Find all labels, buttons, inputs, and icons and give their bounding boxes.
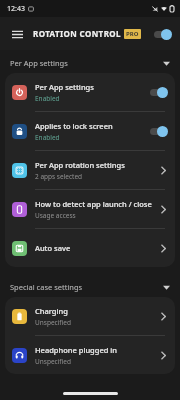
staticText: Unspecified	[35, 357, 71, 366]
button[interactable]: Applies to lock screen	[5, 112, 175, 150]
staticText: Per App rotation settings	[35, 160, 125, 170]
staticText: Special case settings	[10, 282, 83, 292]
staticText: Unspecified	[35, 318, 71, 327]
staticText: 12:43	[7, 4, 25, 14]
staticText: Enabled	[35, 94, 60, 103]
button[interactable]: Per App settings	[5, 73, 175, 111]
staticText: How to detect app launch / close	[35, 199, 152, 209]
staticText: Charging	[35, 306, 68, 316]
button[interactable]: Open navigation menu	[6, 23, 28, 45]
button[interactable]: Charging	[5, 297, 175, 335]
staticText: Per App settings	[35, 82, 94, 92]
staticText: PRO	[126, 30, 139, 38]
staticText: 2 apps selected	[35, 172, 83, 181]
staticText: Headphone plugged in	[35, 345, 118, 355]
staticText: ROTATION CONTROL	[33, 28, 121, 39]
staticText: Applies to lock screen	[35, 121, 113, 131]
button[interactable]: Master rotation toggle	[150, 26, 172, 42]
staticText: Per App settings	[10, 58, 68, 68]
button[interactable]: Headphone plugged in	[5, 336, 175, 374]
button[interactable]: Per App rotation settings	[5, 151, 175, 189]
staticText: Enabled	[35, 133, 60, 142]
button[interactable]: How to detect app launch / close	[5, 190, 175, 228]
staticText: Usage access	[35, 211, 76, 220]
staticText: Auto save	[35, 243, 71, 253]
button[interactable]: Auto save	[5, 229, 175, 267]
